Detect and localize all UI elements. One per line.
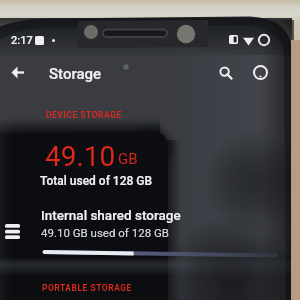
staticText: 2:17 bbox=[11, 34, 33, 47]
staticText: PORTABLE STORAGE bbox=[42, 283, 132, 293]
button[interactable]: Help bbox=[247, 59, 274, 86]
button[interactable]: Search bbox=[212, 59, 239, 86]
staticText: DEVICE STORAGE bbox=[46, 110, 122, 120]
button[interactable]: Internal shared storage bbox=[0, 203, 300, 243]
staticText: Internal shared storage bbox=[41, 207, 181, 223]
staticText: Storage bbox=[49, 65, 102, 83]
staticText: GB bbox=[118, 150, 138, 168]
staticText: 49.10 GB used of 128 GB bbox=[41, 226, 169, 239]
button[interactable]: Back bbox=[4, 59, 31, 86]
staticText: 49.10 bbox=[45, 140, 116, 173]
staticText: Total used of 128 GB bbox=[40, 174, 153, 188]
